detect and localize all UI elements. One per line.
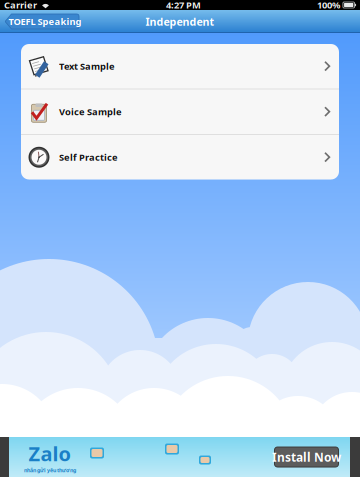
staticText: 100%: [317, 0, 340, 11]
staticText: nhắn gửi yêu thương: [24, 467, 76, 474]
staticText: Self Practice: [59, 151, 118, 163]
staticText: Carrier: [4, 0, 37, 11]
button[interactable]: Self Practice: [21, 135, 339, 179]
button[interactable]: Zalo: [0, 437, 360, 477]
staticText: TOEFL Speaking: [8, 15, 81, 27]
button[interactable]: Voice Sample: [21, 89, 339, 134]
staticText: Text Sample: [59, 60, 115, 72]
button[interactable]: Text Sample: [21, 44, 339, 88]
staticText: 4:27 PM: [166, 0, 201, 11]
staticText: Install Now: [272, 449, 341, 465]
button[interactable]: TOEFL Speaking: [5, 14, 79, 29]
staticText: Independent: [145, 14, 214, 29]
staticText: Zalo: [28, 440, 71, 467]
staticText: Voice Sample: [59, 106, 122, 118]
